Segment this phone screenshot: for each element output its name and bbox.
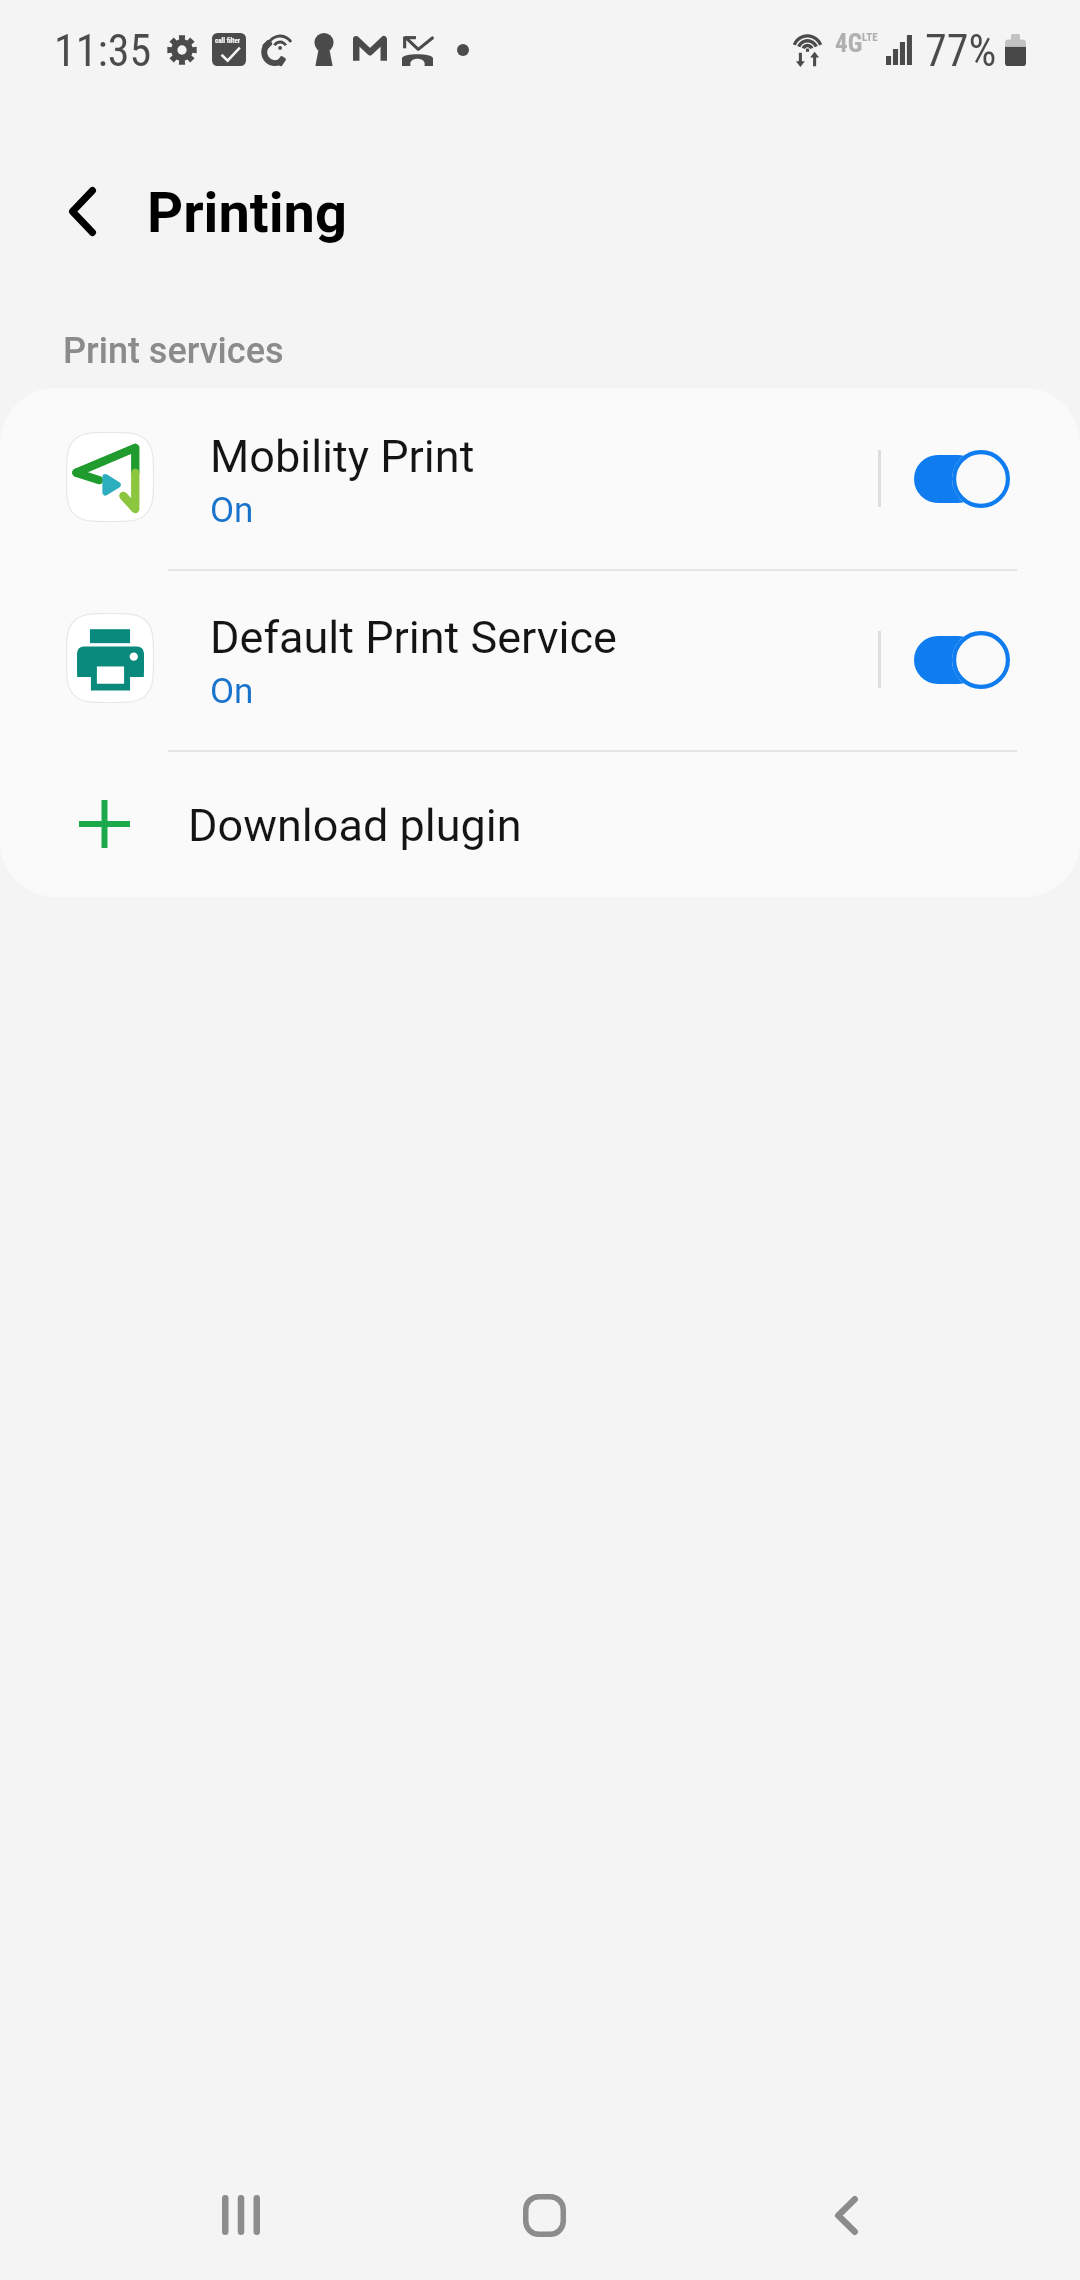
staticText: Printing: [147, 180, 347, 246]
button[interactable]: Home: [474, 2145, 614, 2280]
staticText: On: [210, 671, 254, 712]
staticText: 4G: [835, 29, 863, 57]
staticText: 11:35: [54, 25, 152, 77]
button[interactable]: Recent apps: [171, 2145, 311, 2280]
staticText: call filter: [215, 37, 241, 45]
button[interactable]: Toggle on: [914, 630, 1010, 690]
staticText: LTE: [862, 31, 878, 44]
staticText: 77%: [925, 25, 997, 77]
button[interactable]: Back: [776, 2145, 916, 2280]
button[interactable]: Default Print Service: [0, 569, 1080, 750]
button[interactable]: Toggle on: [914, 449, 1010, 509]
staticText: Print services: [63, 330, 284, 372]
button[interactable]: Navigate up: [12, 141, 152, 281]
staticText: Mobility Print: [210, 430, 475, 483]
button[interactable]: Mobility Print: [0, 388, 1080, 569]
button[interactable]: Download plugin: [0, 750, 1080, 897]
staticText: Default Print Service: [210, 611, 617, 664]
staticText: Download plugin: [188, 799, 522, 852]
staticText: On: [210, 490, 254, 531]
